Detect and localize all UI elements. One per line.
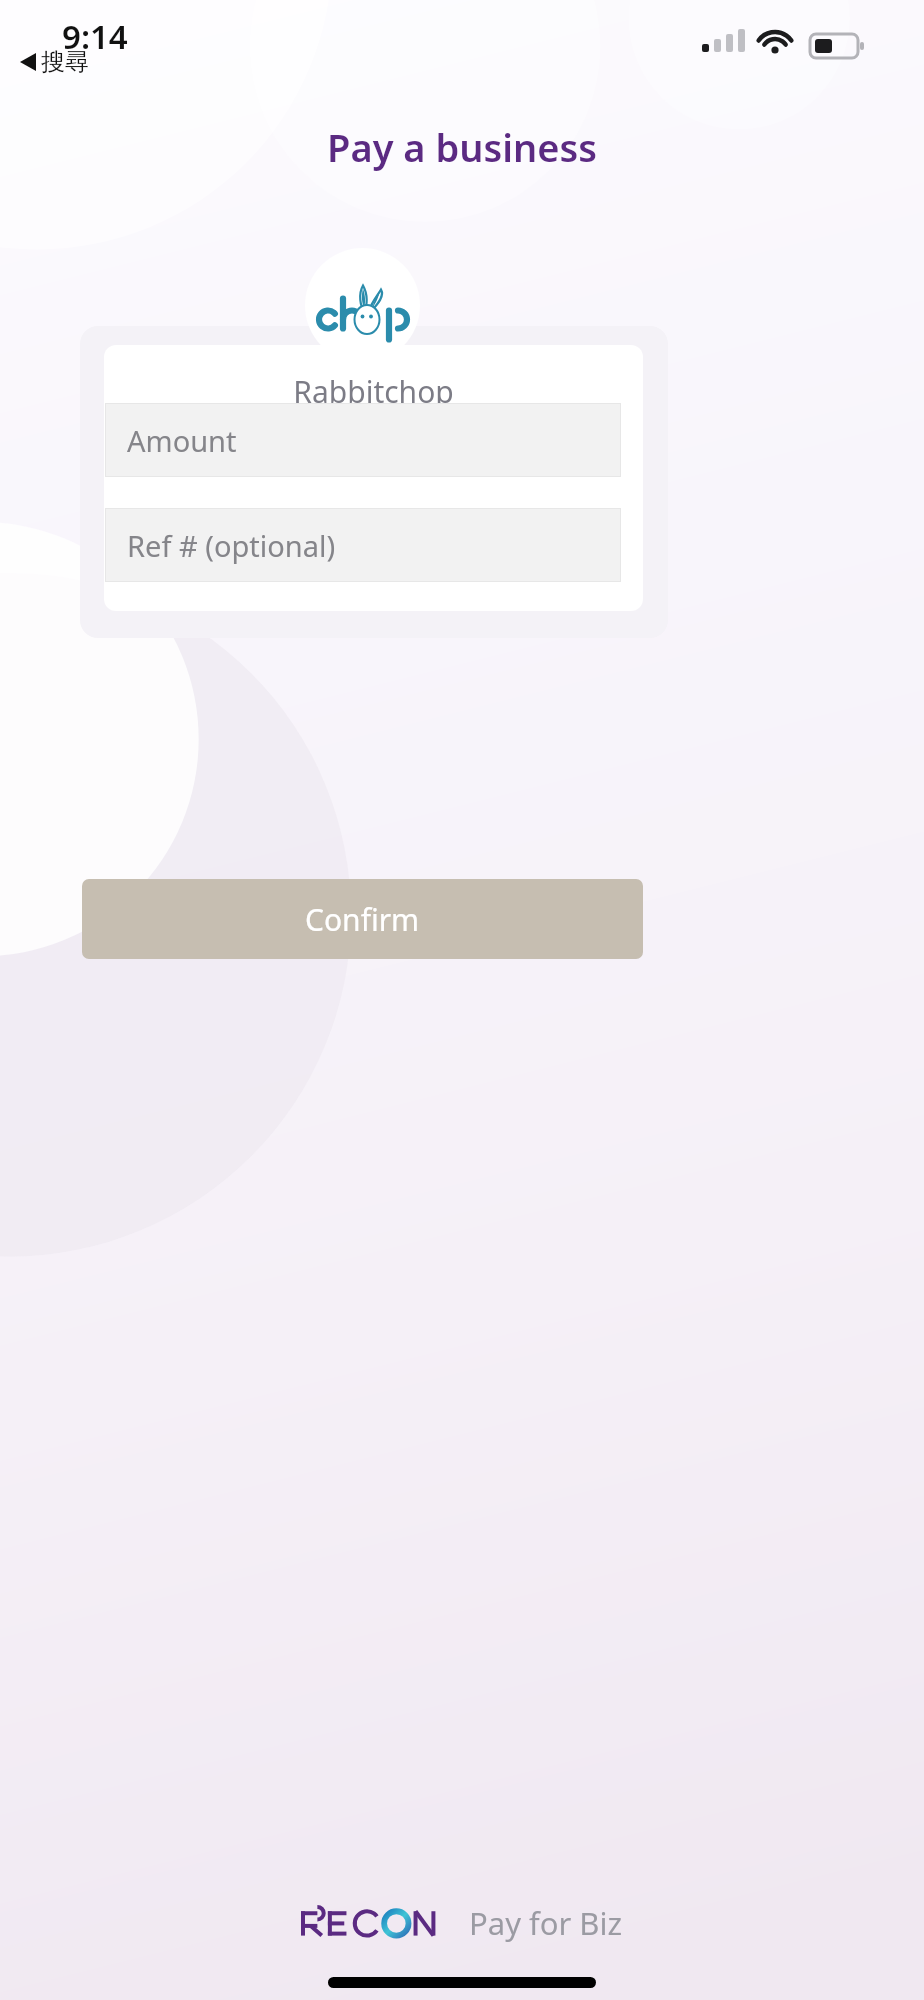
button[interactable]: Confirm: [82, 879, 643, 959]
staticText: Pay a business: [0, 121, 924, 173]
other: Rabbitchop logo: [305, 248, 420, 363]
button[interactable]: Ref # (optional): [105, 508, 621, 582]
staticText: Confirm: [305, 899, 420, 940]
staticText: Rabbitchop: [104, 371, 643, 412]
staticText: 9:14: [62, 14, 128, 59]
staticText: Amount: [127, 421, 237, 460]
button[interactable]: Amount: [105, 403, 621, 477]
staticText: Pay for Biz: [469, 1902, 623, 1944]
staticText: 搜尋: [41, 47, 89, 77]
staticText: Ref # (optional): [127, 526, 336, 565]
